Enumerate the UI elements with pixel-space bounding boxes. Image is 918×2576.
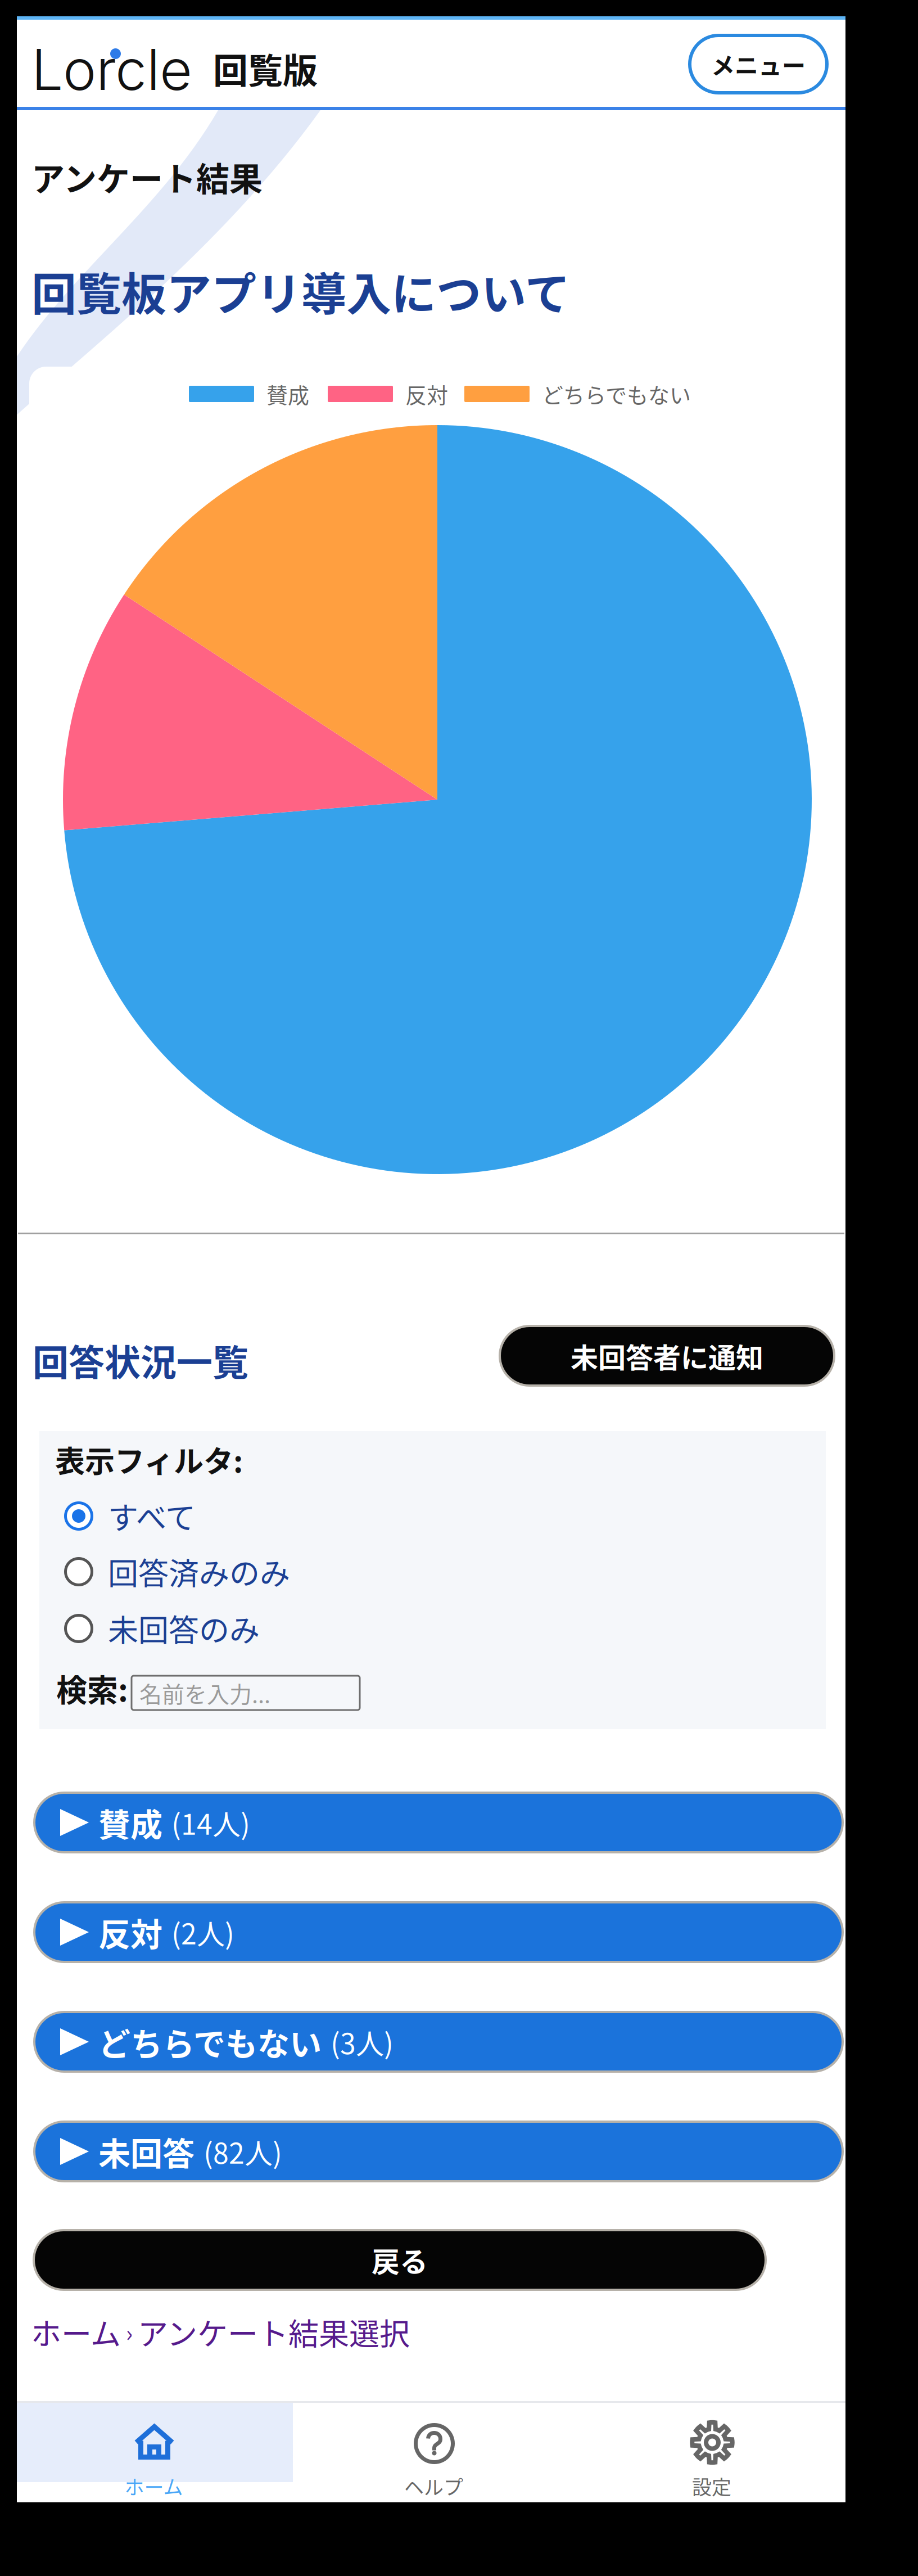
staticText: どちらでもない <box>542 378 691 409</box>
button[interactable]: どちらでもない <box>34 2012 843 2072</box>
staticText: 回覧版 <box>213 43 318 94</box>
staticText: アンケート結果 <box>31 153 263 201</box>
staticText: ホーム <box>31 2310 121 2354</box>
staticText: (2人) <box>171 1912 234 1952</box>
staticText: (3人) <box>331 2021 394 2062</box>
button[interactable]: 反対 <box>34 1902 843 1962</box>
staticText: 回答状況一覧 <box>33 1334 248 1386</box>
staticText: 未回答 <box>98 2128 195 2175</box>
staticText: 未回答のみ <box>108 1606 260 1650</box>
button[interactable]: 回答済みのみ <box>64 1544 458 1599</box>
staticText: 戻る <box>372 2240 428 2280</box>
button[interactable]: 未回答者に通知 <box>500 1326 834 1386</box>
staticText: 回答済みのみ <box>108 1550 290 1594</box>
staticText: ヘルプ <box>404 2472 463 2500</box>
staticText: Lorcle <box>31 35 192 103</box>
button[interactable]: ホーム <box>31 2310 410 2354</box>
staticText: 賛成 <box>266 378 309 409</box>
button[interactable]: 未回答 <box>34 2122 843 2181</box>
staticText: 表示フィルタ: <box>55 1438 243 1481</box>
staticText: (14人) <box>171 1802 250 1843</box>
staticText: 反対 <box>405 378 448 409</box>
staticText: ホーム <box>125 2472 183 2500</box>
staticText: 設定 <box>692 2472 731 2500</box>
button[interactable]: 賛成 <box>34 1793 843 1852</box>
button[interactable]: 設定 <box>569 2403 845 2502</box>
button[interactable]: 戻る <box>34 2230 766 2290</box>
button[interactable]: メニュー <box>690 35 827 93</box>
staticText: (82人) <box>204 2131 282 2172</box>
staticText: 名前を入力... <box>139 1677 270 1709</box>
staticText: アンケート結果選択 <box>138 2310 410 2354</box>
staticText: 賛成 <box>98 1799 162 1846</box>
button[interactable]: すべて <box>64 1488 458 1544</box>
button[interactable]: 未回答のみ <box>64 1601 458 1656</box>
staticText: すべて <box>108 1494 196 1538</box>
staticText: 未回答者に通知 <box>571 1336 763 1376</box>
staticText: 回覧板アプリ導入について <box>31 258 570 323</box>
staticText: 検索: <box>56 1666 128 1710</box>
staticText: メニュー <box>711 47 806 81</box>
button[interactable]: ホーム <box>17 2403 293 2502</box>
staticText: 反対 <box>98 1909 162 1955</box>
staticText: どちらでもない <box>98 2019 322 2065</box>
staticText: › <box>121 2316 138 2348</box>
button[interactable]: ヘルプ <box>293 2403 569 2502</box>
